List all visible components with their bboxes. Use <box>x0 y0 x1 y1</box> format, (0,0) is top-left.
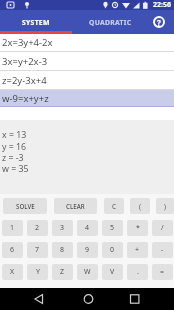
staticText: Y <box>36 267 40 277</box>
button[interactable]: z=2y-3x+4 <box>0 71 174 89</box>
button[interactable]: 0 <box>102 242 123 258</box>
staticText: 9 <box>85 245 90 255</box>
button[interactable]: ? <box>153 16 165 28</box>
staticText: 1 <box>10 223 15 233</box>
staticText: 6 <box>10 245 15 255</box>
button[interactable]: . <box>127 264 148 280</box>
staticText: 7 <box>35 245 40 255</box>
staticText: ? <box>157 17 161 28</box>
button[interactable]: X <box>2 264 23 280</box>
staticText: 3 <box>60 223 65 233</box>
staticText: 2 <box>35 223 40 233</box>
button[interactable]: 6 <box>2 242 23 258</box>
button[interactable]: + <box>127 242 148 258</box>
button[interactable] <box>58 288 116 310</box>
button[interactable]: QUADRATIC <box>72 10 148 34</box>
staticText: . <box>137 267 139 277</box>
button[interactable]: 2 <box>27 220 48 236</box>
button[interactable]: 5 <box>102 220 123 236</box>
staticText: z=2y-3x+4 <box>2 74 47 87</box>
button[interactable]: 3x=y+2x-3 <box>0 52 174 70</box>
button[interactable] <box>0 288 58 310</box>
button[interactable]: w-9=x+y+z <box>0 90 174 106</box>
staticText: 5 <box>110 223 115 233</box>
button[interactable]: 2x=3y+4-2x <box>0 34 174 51</box>
button[interactable]: 3 <box>52 220 73 236</box>
staticText: - <box>161 245 164 255</box>
button[interactable]: V <box>102 264 123 280</box>
button[interactable]: 7 <box>27 242 48 258</box>
staticText: QUADRATIC <box>89 18 132 27</box>
staticText: 2x=3y+4-2x <box>2 36 53 49</box>
button[interactable]: CLEAR <box>54 198 97 214</box>
staticText: X <box>10 267 15 277</box>
button[interactable]: ) <box>156 198 174 214</box>
button[interactable]: * <box>127 220 148 236</box>
staticText: ) <box>164 202 166 211</box>
staticText: / <box>161 223 164 233</box>
staticText: CLEAR <box>66 202 85 210</box>
button[interactable]: C <box>104 198 124 214</box>
button[interactable] <box>116 288 174 310</box>
button[interactable]: ( <box>130 198 150 214</box>
staticText: x = 13 y = 16 z = -3 w = 35 <box>2 129 29 174</box>
staticText: C <box>112 202 117 211</box>
staticText: 4 <box>85 223 90 233</box>
button[interactable]: - <box>152 242 173 258</box>
staticText: 3x=y+2x-3 <box>2 55 48 68</box>
button[interactable]: 4 <box>77 220 98 236</box>
staticText: SOLVE <box>16 202 35 210</box>
button[interactable]: SYSTEM <box>0 10 72 34</box>
staticText: W <box>84 267 91 277</box>
staticText: = <box>160 267 165 277</box>
staticText: + <box>135 245 140 255</box>
staticText: 22:56 <box>153 0 171 10</box>
staticText: V <box>110 267 115 277</box>
button[interactable]: 1 <box>2 220 23 236</box>
button[interactable]: = <box>152 264 173 280</box>
button[interactable]: 8 <box>52 242 73 258</box>
button[interactable]: 9 <box>77 242 98 258</box>
button[interactable]: W <box>77 264 98 280</box>
staticText: w-9=x+y+z <box>2 92 49 105</box>
staticText: 8 <box>60 245 65 255</box>
button[interactable]: Z <box>52 264 73 280</box>
button[interactable]: Y <box>27 264 48 280</box>
staticText: Z <box>60 267 65 277</box>
button[interactable]: / <box>152 220 173 236</box>
staticText: SYSTEM <box>22 18 50 27</box>
staticText: * <box>136 223 140 233</box>
staticText: ( <box>139 202 141 211</box>
staticText: 0 <box>110 245 115 255</box>
button[interactable]: SOLVE <box>3 198 47 214</box>
